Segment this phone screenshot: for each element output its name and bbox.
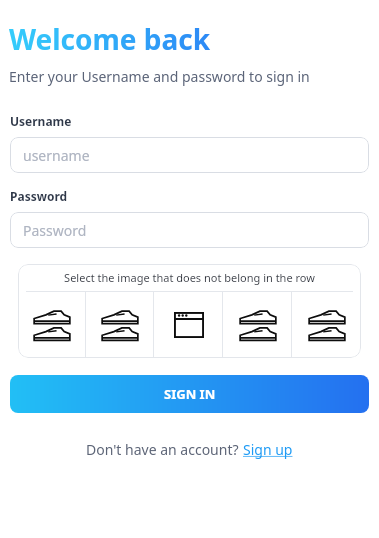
staticText: Username bbox=[10, 113, 72, 129]
staticText: Enter your Username and password to sign… bbox=[9, 67, 310, 86]
staticText: Password bbox=[23, 221, 87, 240]
button[interactable]: Shoes image bbox=[18, 292, 86, 358]
staticText: username bbox=[23, 146, 90, 165]
button[interactable]: Sign up bbox=[243, 440, 293, 459]
staticText: Select the image that does not belong in… bbox=[64, 270, 315, 285]
button[interactable]: Shoes image bbox=[223, 292, 292, 358]
staticText: SIGN IN bbox=[164, 385, 216, 403]
button[interactable]: username bbox=[10, 137, 369, 173]
button[interactable]: Shoes image bbox=[292, 292, 361, 358]
button[interactable]: Browser window image bbox=[154, 292, 223, 358]
button[interactable]: Shoes image bbox=[86, 292, 154, 358]
staticText: Welcome back bbox=[9, 20, 211, 58]
staticText: Don't have an account? bbox=[86, 440, 243, 459]
staticText: Password bbox=[10, 188, 68, 204]
staticText: Sign up bbox=[243, 440, 293, 459]
button[interactable]: SIGN IN bbox=[10, 375, 369, 413]
button[interactable]: Password bbox=[10, 212, 369, 248]
